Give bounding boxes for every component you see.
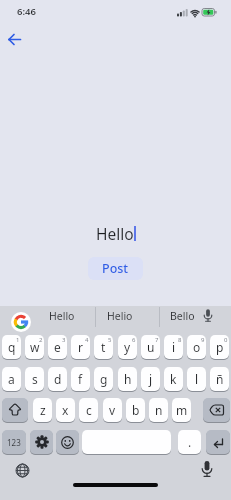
staticText: 1	[16, 336, 20, 344]
staticText: p	[216, 339, 224, 355]
staticText: e	[54, 339, 61, 355]
button[interactable]: q	[2, 335, 21, 359]
staticText: Helio	[107, 309, 133, 323]
staticText: s	[32, 371, 38, 387]
staticText: 6:46	[17, 5, 36, 18]
staticText: Bello	[170, 309, 195, 323]
staticText: w	[30, 339, 40, 355]
button[interactable]: .	[178, 430, 201, 454]
button[interactable]: a	[2, 367, 21, 391]
staticText: f	[78, 371, 83, 387]
staticText: 6	[132, 336, 136, 344]
button[interactable]	[82, 430, 171, 454]
staticText: 123	[7, 437, 21, 448]
staticText: u	[147, 339, 155, 355]
button[interactable]: 123	[2, 430, 26, 454]
staticText: Hello	[96, 223, 134, 244]
button[interactable]: Helio	[98, 306, 142, 326]
button[interactable]: k	[164, 367, 183, 391]
button[interactable]	[11, 312, 31, 332]
staticText: Hello	[49, 309, 75, 323]
staticText: i	[172, 339, 176, 355]
button[interactable]	[30, 430, 53, 454]
staticText: m	[176, 402, 188, 418]
button[interactable]: v	[103, 398, 122, 422]
button[interactable]: p	[210, 335, 229, 359]
button[interactable]	[5, 30, 25, 48]
staticText: 0	[224, 336, 228, 344]
button[interactable]: Bello	[160, 306, 204, 326]
staticText: k	[170, 371, 177, 387]
staticText: x	[62, 402, 69, 418]
button[interactable]: d	[48, 367, 67, 391]
staticText: 2	[39, 336, 43, 344]
button[interactable]: i	[164, 335, 183, 359]
button[interactable]: c	[79, 398, 98, 422]
staticText: 4	[85, 336, 89, 344]
staticText: 3	[62, 336, 66, 344]
button[interactable]: f	[71, 367, 90, 391]
button[interactable]: u	[141, 335, 160, 359]
staticText: a	[8, 371, 15, 387]
staticText: b	[132, 402, 140, 418]
button[interactable]	[12, 461, 33, 479]
staticText: ñ	[216, 371, 224, 387]
button[interactable]: o	[187, 335, 206, 359]
staticText: n	[155, 402, 163, 418]
button[interactable]: g	[94, 367, 113, 391]
staticText: v	[109, 402, 116, 418]
staticText: z	[40, 402, 46, 418]
staticText: Post	[102, 260, 129, 277]
button[interactable]	[198, 459, 216, 481]
staticText: 9	[201, 336, 205, 344]
button[interactable]: y	[118, 335, 137, 359]
button[interactable]: l	[187, 367, 206, 391]
button[interactable]: e	[48, 335, 67, 359]
button[interactable]: b	[126, 398, 145, 422]
button[interactable]: ñ	[210, 367, 229, 391]
button[interactable]: s	[25, 367, 44, 391]
button[interactable]	[56, 430, 79, 454]
staticText: d	[54, 371, 62, 387]
button[interactable]	[199, 306, 217, 332]
button[interactable]: t	[94, 335, 113, 359]
button[interactable]: r	[71, 335, 90, 359]
staticText: r	[78, 339, 83, 355]
button[interactable]: z	[33, 398, 52, 422]
staticText: 5	[108, 336, 112, 344]
staticText: o	[193, 339, 201, 355]
staticText: t	[101, 339, 106, 355]
button[interactable]: n	[149, 398, 168, 422]
staticText: .	[188, 434, 192, 450]
staticText: q	[8, 339, 16, 355]
button[interactable]: Hello	[40, 306, 84, 326]
staticText: 8	[178, 336, 182, 344]
button[interactable]: w	[25, 335, 44, 359]
staticText: y	[124, 339, 131, 355]
staticText: h	[124, 371, 132, 387]
button[interactable]: x	[56, 398, 75, 422]
staticText: l	[195, 371, 199, 387]
button[interactable]: j	[141, 367, 160, 391]
button[interactable]: m	[172, 398, 191, 422]
staticText: j	[149, 371, 153, 387]
button[interactable]	[206, 430, 230, 454]
button[interactable]: Post	[88, 257, 143, 280]
staticText: c	[86, 402, 92, 418]
button[interactable]: h	[118, 367, 137, 391]
staticText: 7	[155, 336, 159, 344]
staticText: g	[100, 371, 108, 387]
button[interactable]	[2, 398, 28, 422]
button[interactable]	[203, 398, 230, 422]
